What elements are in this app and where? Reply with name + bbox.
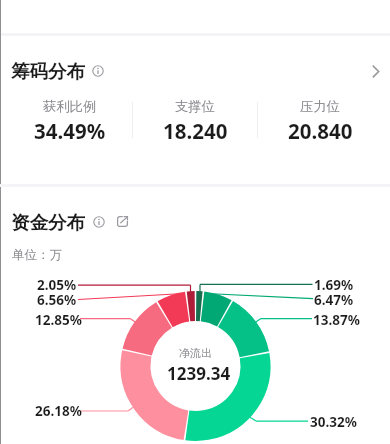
staticText: 26.18% [35,402,82,420]
other: More [369,65,382,78]
staticText: 20.840 [288,117,353,142]
staticText: 支撑位 [175,98,215,115]
button[interactable]: More [369,65,382,78]
staticText: 单位：万 [12,247,62,263]
staticText: 1.69% [314,276,354,294]
staticText: 13.87% [313,311,360,329]
other: Info [92,65,104,77]
button[interactable]: Info [93,216,105,228]
other: Share [117,216,128,227]
staticText: 1239.34 [167,362,231,385]
staticText: 12.85% [35,311,82,329]
button[interactable]: 压力位 [258,98,382,142]
staticText: 6.56% [37,291,77,309]
staticText: 30.32% [310,413,357,431]
button[interactable]: 获利比例 [8,98,132,142]
staticText: 压力位 [300,98,340,115]
staticText: 净流出 [179,346,212,360]
staticText: 6.47% [314,291,354,309]
button[interactable]: Share [117,216,128,227]
staticText: 2.05% [37,276,77,294]
staticText: 18.240 [163,117,228,142]
staticText: 筹码分布 [11,60,85,83]
staticText: 34.49% [34,117,106,142]
staticText: 获利比例 [43,98,97,115]
staticText: 资金分布 [11,211,85,234]
other: Info [93,216,105,228]
button[interactable]: 筹码分布 [0,52,390,92]
button[interactable]: 支撑位 [133,98,257,142]
